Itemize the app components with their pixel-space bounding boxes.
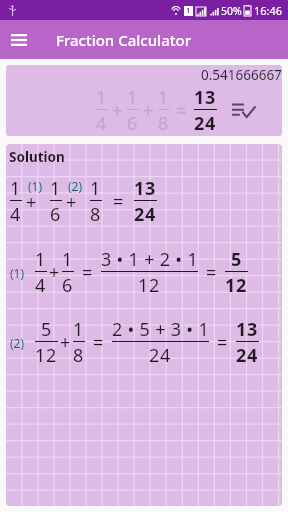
staticText: 24 — [236, 343, 259, 368]
staticText: + — [49, 260, 60, 285]
staticText: 8 — [158, 111, 170, 136]
staticText: = — [82, 260, 93, 285]
staticText: 12 — [138, 273, 161, 298]
staticText: 6 — [127, 111, 139, 136]
staticText: (1) — [10, 265, 25, 281]
staticText: 1 — [10, 176, 22, 201]
staticText: 24 — [149, 343, 172, 368]
staticText: 13 — [134, 176, 157, 201]
staticText: (2) — [68, 178, 83, 194]
staticText: = — [206, 260, 217, 285]
staticText: 5 — [41, 317, 53, 342]
staticText: 1 — [62, 247, 74, 272]
staticText: 0.541666667 — [201, 66, 282, 84]
staticText: 13 — [236, 317, 259, 342]
staticText: 1 — [35, 247, 47, 272]
staticText: 1 — [96, 85, 108, 110]
staticText: 24 — [134, 202, 157, 227]
staticText: 6 — [50, 202, 62, 227]
staticText: 1 — [127, 85, 139, 110]
staticText: + — [60, 330, 71, 355]
staticText: 12 — [225, 273, 248, 298]
staticText: Fraction Calculator — [56, 30, 191, 50]
staticText: (2) — [10, 335, 25, 351]
staticText: Solution — [9, 148, 65, 166]
staticText: 2 • 5 + 3 • 1 — [112, 317, 209, 342]
staticText: 4 — [35, 273, 47, 298]
button[interactable]: Open navigation menu — [0, 21, 38, 58]
staticText: 24 — [194, 111, 217, 136]
staticText: + — [112, 98, 123, 123]
staticText: 6 — [62, 273, 74, 298]
staticText: = — [93, 330, 104, 355]
staticText: 8 — [90, 202, 102, 227]
staticText: 16:46 — [254, 3, 283, 18]
staticText: 1 — [158, 85, 170, 110]
staticText: 1 — [73, 317, 85, 342]
staticText: 5 — [231, 247, 243, 272]
staticText: + — [26, 190, 37, 215]
staticText: + — [143, 98, 154, 123]
staticText: 8 — [73, 343, 85, 368]
staticText: 3 • 1 + 2 • 1 — [101, 247, 198, 272]
staticText: (1) — [28, 178, 43, 194]
staticText: 1 — [186, 6, 191, 16]
staticText: 4 — [10, 202, 22, 227]
button[interactable]: 0.541666667 — [6, 65, 282, 136]
staticText: 12 — [35, 343, 58, 368]
staticText: + — [66, 190, 77, 215]
staticText: = — [176, 98, 187, 123]
button[interactable]: Show solution steps — [230, 98, 256, 124]
staticText: 4 — [96, 111, 108, 136]
staticText: 50% — [221, 4, 242, 18]
staticText: 13 — [194, 85, 217, 110]
staticText: = — [217, 330, 228, 355]
staticText: 1 — [50, 176, 62, 201]
staticText: 1 — [90, 176, 102, 201]
staticText: = — [113, 189, 124, 214]
